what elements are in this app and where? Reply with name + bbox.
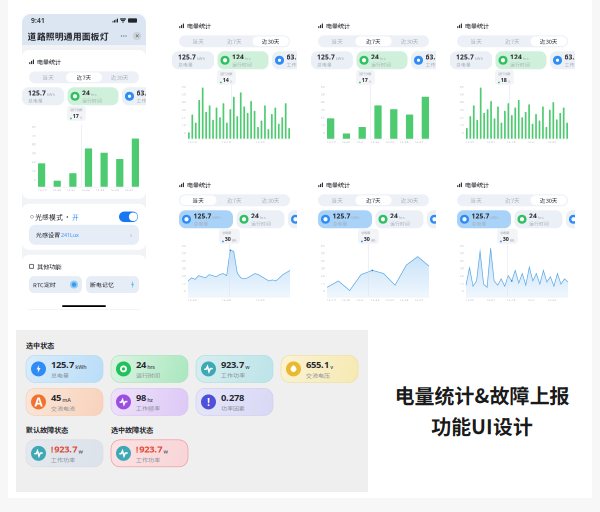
button[interactable]: 近30天 — [531, 36, 567, 46]
staticText: 30 — [460, 267, 464, 270]
button[interactable]: 125.7 — [311, 51, 353, 69]
staticText: 655.1 — [306, 358, 329, 370]
button[interactable]: ! — [26, 440, 103, 467]
button[interactable]: 当天 — [180, 195, 216, 205]
staticText: v — [330, 363, 333, 370]
button[interactable]: ! — [196, 388, 273, 415]
button[interactable]: 63.1 — [550, 51, 592, 69]
button[interactable]: 655.1 — [281, 355, 358, 382]
button[interactable]: 近30天 — [392, 195, 428, 205]
staticText: 10 — [321, 123, 325, 127]
button[interactable]: Light sensing mode toggle — [119, 212, 138, 222]
button[interactable]: A — [26, 388, 103, 415]
button[interactable]: 近7天 — [494, 36, 531, 46]
button[interactable]: 24 — [111, 355, 188, 382]
button[interactable]: 近30天 — [531, 195, 567, 205]
button[interactable]: 24 — [67, 87, 118, 105]
staticText: 总电量 — [222, 230, 231, 235]
button[interactable]: 近30天 — [102, 72, 138, 82]
button[interactable]: 近7天 — [216, 36, 253, 46]
button[interactable]: 当天 — [180, 36, 216, 46]
button[interactable]: 当天 — [319, 36, 355, 46]
staticText: 0 — [34, 178, 36, 181]
button[interactable]: 光感设置 — [29, 225, 139, 245]
staticText: 运行时间 — [251, 220, 271, 227]
staticText: 24 — [82, 88, 90, 97]
staticText: 12-18 — [222, 140, 231, 144]
staticText: 12-24 — [110, 188, 119, 192]
button[interactable]: RTC定时 — [29, 276, 82, 293]
button[interactable]: 当天 — [319, 195, 355, 205]
staticText: 总电量 — [51, 371, 69, 380]
staticText: 近7天 — [227, 37, 242, 45]
button[interactable]: 当天 — [30, 72, 66, 82]
staticText: 总电量 — [456, 61, 471, 68]
button[interactable]: 63.1 — [566, 210, 600, 228]
button[interactable]: 断电记忆 — [86, 276, 139, 293]
staticText: 50 — [460, 251, 464, 255]
button[interactable]: 63.1 — [122, 87, 164, 105]
button[interactable]: Close — [133, 32, 141, 40]
button[interactable]: 近7天 — [355, 36, 392, 46]
button[interactable]: 124 — [495, 51, 546, 69]
staticText: 工作频率 — [136, 404, 160, 413]
button[interactable]: 近7天 — [494, 195, 531, 205]
staticText: 运行次数 — [359, 71, 371, 76]
button[interactable]: 近7天 — [216, 195, 253, 205]
staticText: 12-25 — [414, 140, 423, 144]
button[interactable]: 125.7 — [22, 87, 64, 105]
button[interactable]: 当天 — [458, 195, 494, 205]
button[interactable]: 125.7 — [172, 51, 214, 69]
staticText: 30 — [460, 108, 464, 111]
staticText: hrs — [538, 215, 544, 220]
staticText: 50 — [321, 251, 325, 255]
staticText: 断电记忆 — [90, 280, 114, 289]
staticText: 总电量 — [361, 230, 370, 235]
staticText: 17 — [362, 76, 368, 83]
button[interactable]: 63.1 — [411, 51, 453, 69]
staticText: 工作功率 — [302, 220, 322, 227]
staticText: hrs — [260, 215, 266, 220]
staticText: 50 — [32, 134, 36, 137]
button[interactable]: 125.7 — [179, 210, 233, 228]
button[interactable]: 63.1 — [272, 51, 314, 69]
button[interactable]: 近30天 — [253, 36, 289, 46]
staticText: 30 — [321, 267, 325, 270]
button[interactable]: 98 — [111, 388, 188, 415]
button[interactable]: 124 — [217, 51, 268, 69]
button[interactable]: 923.7 — [196, 355, 273, 382]
staticText: 次 — [369, 80, 372, 83]
staticText: 40 — [460, 259, 464, 262]
button[interactable]: 24 — [514, 210, 562, 228]
staticText: kWh — [75, 363, 86, 370]
button[interactable]: ! — [111, 440, 188, 467]
button[interactable]: 24 — [375, 210, 423, 228]
button[interactable]: 63.1 — [427, 210, 469, 228]
button[interactable]: 24 — [356, 51, 407, 69]
staticText: 0.278 — [221, 391, 244, 403]
button[interactable]: 近30天 — [392, 36, 428, 46]
button[interactable]: 24 — [236, 210, 284, 228]
button[interactable]: 近7天 — [66, 72, 102, 82]
button[interactable]: 125.7 — [450, 51, 492, 69]
button[interactable]: More — [118, 29, 130, 43]
button[interactable]: 当天 — [458, 36, 494, 46]
staticText: 近30天 — [262, 196, 280, 204]
button[interactable]: 近7天 — [355, 195, 392, 205]
staticText: 125.7 — [28, 88, 46, 97]
staticText: kWh — [336, 56, 344, 61]
button[interactable]: 125.7 — [318, 210, 372, 228]
button[interactable]: 63.1 — [288, 210, 330, 228]
button[interactable]: 125.7 — [26, 355, 103, 382]
staticText: 14 — [223, 76, 229, 83]
staticText: 运行次数 — [70, 107, 82, 112]
staticText: hrs — [399, 215, 405, 220]
button[interactable]: 近30天 — [253, 195, 289, 205]
staticText: 60 — [321, 85, 325, 88]
button[interactable]: 125.7 — [457, 210, 511, 228]
staticText: 20 — [182, 274, 186, 278]
staticText: 12-14 — [507, 140, 516, 144]
